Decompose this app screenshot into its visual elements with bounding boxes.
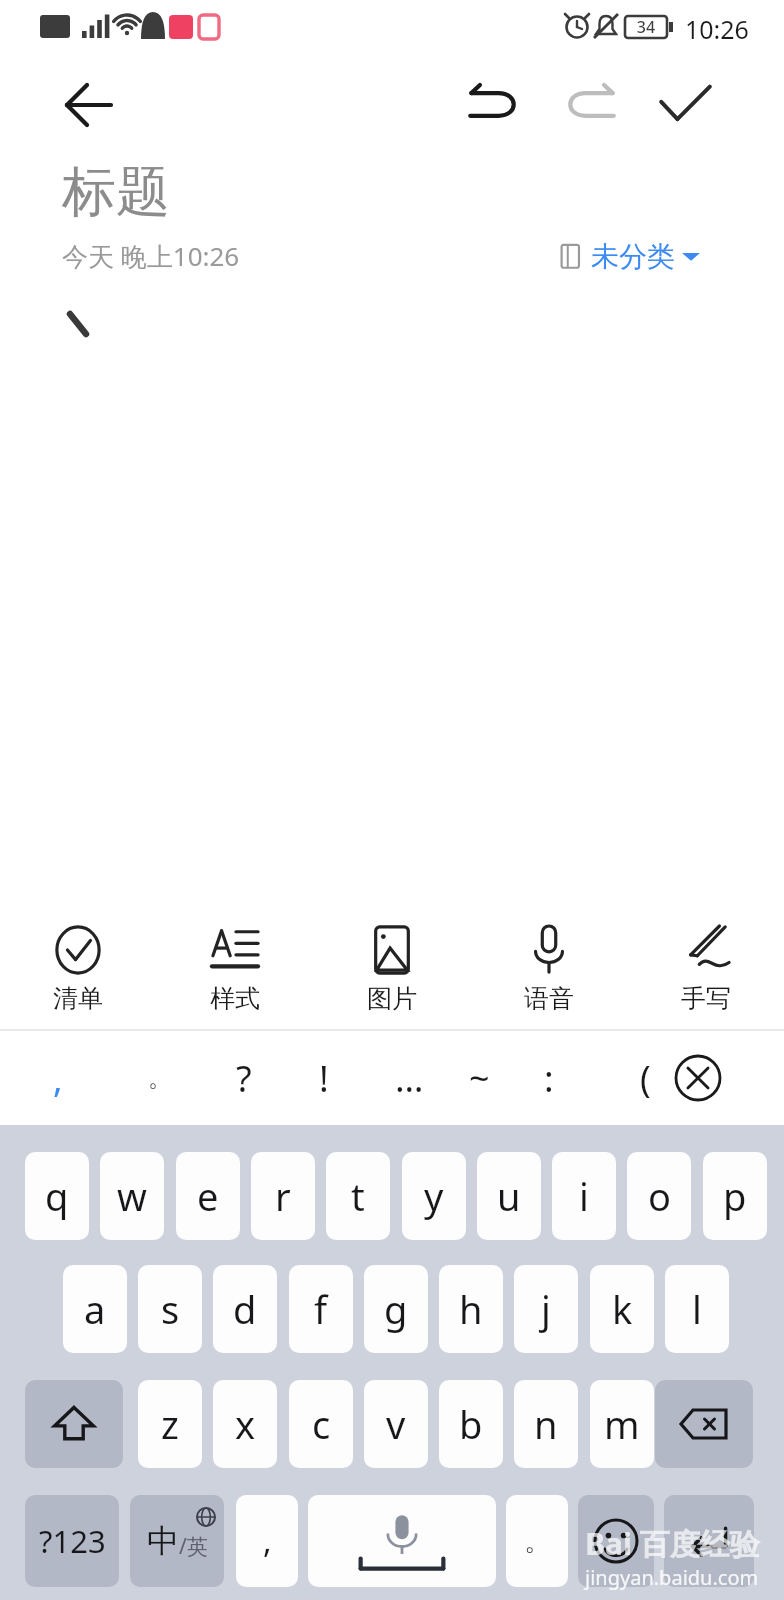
button[interactable]: 语音	[470, 912, 627, 1028]
button[interactable]: 。	[506, 1495, 568, 1587]
staticText: x	[235, 1398, 256, 1450]
staticText: q	[45, 1170, 69, 1222]
staticText: g	[384, 1283, 408, 1335]
button[interactable]: Shift	[25, 1380, 123, 1468]
button[interactable]: 图片	[313, 912, 470, 1028]
staticText: j	[541, 1283, 551, 1335]
staticText: a	[84, 1283, 106, 1335]
staticText: c	[312, 1398, 331, 1450]
staticText: p	[723, 1170, 747, 1222]
button[interactable]: m	[590, 1380, 654, 1468]
staticText: Bai 百度经验	[585, 1523, 760, 1564]
staticText: 34	[625, 16, 667, 38]
button[interactable]: :	[513, 1031, 585, 1125]
button[interactable]: ~	[443, 1031, 515, 1125]
staticText: jingyan.baidu.com	[585, 1564, 759, 1591]
staticText: o	[648, 1170, 671, 1222]
staticText: e	[197, 1170, 219, 1222]
staticText: ,	[263, 1519, 272, 1563]
staticText: 10:26	[685, 12, 749, 46]
staticText: s	[161, 1283, 180, 1335]
button[interactable]: ?123	[25, 1495, 119, 1587]
button[interactable]: b	[439, 1380, 503, 1468]
staticText: d	[233, 1283, 257, 1335]
staticText: ~	[469, 1054, 490, 1103]
button[interactable]: y	[402, 1152, 466, 1240]
staticText: t	[351, 1170, 365, 1222]
staticText: i	[579, 1170, 589, 1222]
button[interactable]: Switch input language	[130, 1495, 224, 1587]
staticText: n	[534, 1398, 558, 1450]
button[interactable]: c	[289, 1380, 353, 1468]
staticText: 清单	[53, 983, 103, 1014]
button[interactable]: Clear	[662, 1043, 734, 1113]
button[interactable]: z	[138, 1380, 202, 1468]
button[interactable]: Redo	[548, 74, 632, 136]
button[interactable]: s	[138, 1265, 202, 1353]
button[interactable]: w	[100, 1152, 164, 1240]
button[interactable]: k	[590, 1265, 654, 1353]
button[interactable]: 。	[124, 1031, 196, 1125]
staticText: z	[161, 1398, 179, 1450]
button[interactable]: h	[439, 1265, 503, 1353]
button[interactable]: p	[703, 1152, 767, 1240]
button[interactable]: d	[213, 1265, 277, 1353]
staticText: 图片	[367, 983, 417, 1014]
staticText: 今天 晚上10:26	[62, 238, 240, 274]
button[interactable]: 样式	[156, 912, 313, 1028]
staticText: 中	[147, 1521, 179, 1561]
button[interactable]: q	[25, 1152, 89, 1240]
staticText: w	[117, 1170, 147, 1222]
button[interactable]: ?	[208, 1031, 280, 1125]
button[interactable]: r	[251, 1152, 315, 1240]
button[interactable]: o	[627, 1152, 691, 1240]
button[interactable]: e	[176, 1152, 240, 1240]
button[interactable]: f	[289, 1265, 353, 1353]
staticText: 标题	[62, 158, 170, 226]
button[interactable]: j	[514, 1265, 578, 1353]
staticText: 语音	[524, 983, 574, 1014]
button[interactable]: u	[477, 1152, 541, 1240]
staticText: (	[640, 1054, 651, 1103]
staticText: y	[424, 1170, 444, 1222]
button[interactable]: i	[552, 1152, 616, 1240]
staticText: l	[692, 1283, 702, 1335]
staticText: u	[497, 1170, 521, 1222]
staticText: :	[544, 1054, 554, 1103]
button[interactable]: 未分类	[556, 234, 700, 278]
button[interactable]: Space	[308, 1495, 496, 1587]
button[interactable]: Back	[42, 74, 134, 136]
staticText: ,	[53, 1054, 63, 1103]
button[interactable]: a	[63, 1265, 127, 1353]
staticText: 样式	[210, 983, 260, 1014]
staticText: 。	[524, 1525, 550, 1558]
button[interactable]: Undo	[452, 74, 536, 136]
button[interactable]: v	[364, 1380, 428, 1468]
button[interactable]: 手写	[627, 912, 784, 1028]
button[interactable]: n	[514, 1380, 578, 1468]
button[interactable]: l	[665, 1265, 729, 1353]
button[interactable]: Enter	[664, 1495, 754, 1587]
staticText: r	[275, 1170, 291, 1222]
button[interactable]: !	[288, 1031, 360, 1125]
button[interactable]	[0, 290, 784, 910]
button[interactable]: 清单	[0, 912, 156, 1028]
button[interactable]: Backspace	[655, 1380, 753, 1468]
staticText: 。	[148, 1063, 172, 1093]
button[interactable]: x	[213, 1380, 277, 1468]
staticText: !	[319, 1054, 329, 1103]
button[interactable]: ,	[236, 1495, 298, 1587]
button[interactable]: (	[609, 1031, 681, 1125]
staticText: …	[395, 1054, 424, 1103]
button[interactable]: …	[373, 1031, 445, 1125]
staticText: ?123	[39, 1520, 106, 1562]
staticText: h	[459, 1283, 483, 1335]
button[interactable]: t	[326, 1152, 390, 1240]
button[interactable]: ,	[22, 1031, 94, 1125]
button[interactable]: Emoji	[578, 1495, 654, 1587]
staticText: 未分类	[591, 239, 675, 274]
button[interactable]: Done	[642, 74, 728, 136]
staticText: b	[459, 1398, 483, 1450]
button[interactable]: g	[364, 1265, 428, 1353]
staticText: ?	[236, 1054, 252, 1103]
